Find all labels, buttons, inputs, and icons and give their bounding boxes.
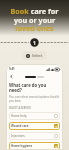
staticText: What care do you need? bbox=[9, 82, 60, 93]
button[interactable]: Home hygiene bbox=[9, 142, 60, 150]
button[interactable]: Injections bbox=[9, 132, 60, 140]
staticText: SELECT A SERVICE bbox=[9, 106, 31, 110]
staticText: Select bbox=[32, 53, 43, 58]
staticText: 1 bbox=[33, 40, 36, 46]
staticText: Book care for you or your loved ones bbox=[4, 6, 65, 33]
button[interactable]: Select bbox=[22, 51, 47, 60]
button[interactable]: Back bbox=[9, 74, 14, 79]
button[interactable]: Wound care bbox=[9, 122, 60, 130]
button[interactable]: Home help bbox=[9, 112, 60, 120]
staticText: Injections bbox=[11, 134, 54, 138]
staticText: Home help bbox=[11, 114, 54, 118]
staticText: You can select several options that fit … bbox=[9, 95, 60, 103]
staticText: 9:41 bbox=[9, 67, 15, 71]
staticText: Wound care bbox=[11, 124, 54, 128]
staticText: Home hygiene bbox=[11, 144, 54, 148]
